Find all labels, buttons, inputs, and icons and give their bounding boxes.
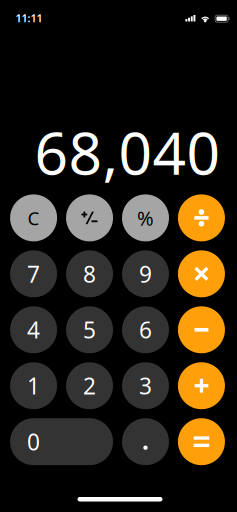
staticText: 2 xyxy=(83,371,96,401)
button[interactable]: % xyxy=(122,194,169,241)
button[interactable]: 8 xyxy=(66,250,113,297)
button[interactable]: 9 xyxy=(122,250,169,297)
staticText: 4 xyxy=(27,315,40,345)
staticText: 11:11 xyxy=(15,11,42,25)
staticText: 8 xyxy=(83,259,96,289)
staticText: 0 xyxy=(27,427,40,457)
button[interactable]: Equals xyxy=(178,418,225,465)
button[interactable]: Add xyxy=(178,362,225,409)
staticText: 7 xyxy=(27,259,40,289)
button[interactable]: Decimal point xyxy=(122,418,169,465)
staticText: % xyxy=(137,205,154,231)
button[interactable]: Multiply xyxy=(178,250,225,297)
staticText: 3 xyxy=(139,371,152,401)
button[interactable]: 6 xyxy=(122,306,169,353)
button[interactable]: C xyxy=(10,194,57,241)
staticText: 68,040 xyxy=(34,113,220,191)
staticText: 5 xyxy=(83,315,96,345)
staticText: 6 xyxy=(139,315,152,345)
button[interactable]: 1 xyxy=(10,362,57,409)
button[interactable]: 2 xyxy=(66,362,113,409)
staticText: 9 xyxy=(139,259,152,289)
button[interactable]: Subtract xyxy=(178,306,225,353)
button[interactable]: 3 xyxy=(122,362,169,409)
button[interactable]: 0 xyxy=(10,418,113,465)
button[interactable]: Divide xyxy=(178,194,225,241)
staticText: C xyxy=(28,205,40,230)
button[interactable]: 5 xyxy=(66,306,113,353)
button[interactable]: Toggle sign xyxy=(66,194,113,241)
button[interactable]: 7 xyxy=(10,250,57,297)
button[interactable]: 4 xyxy=(10,306,57,353)
staticText: 1 xyxy=(27,371,40,401)
